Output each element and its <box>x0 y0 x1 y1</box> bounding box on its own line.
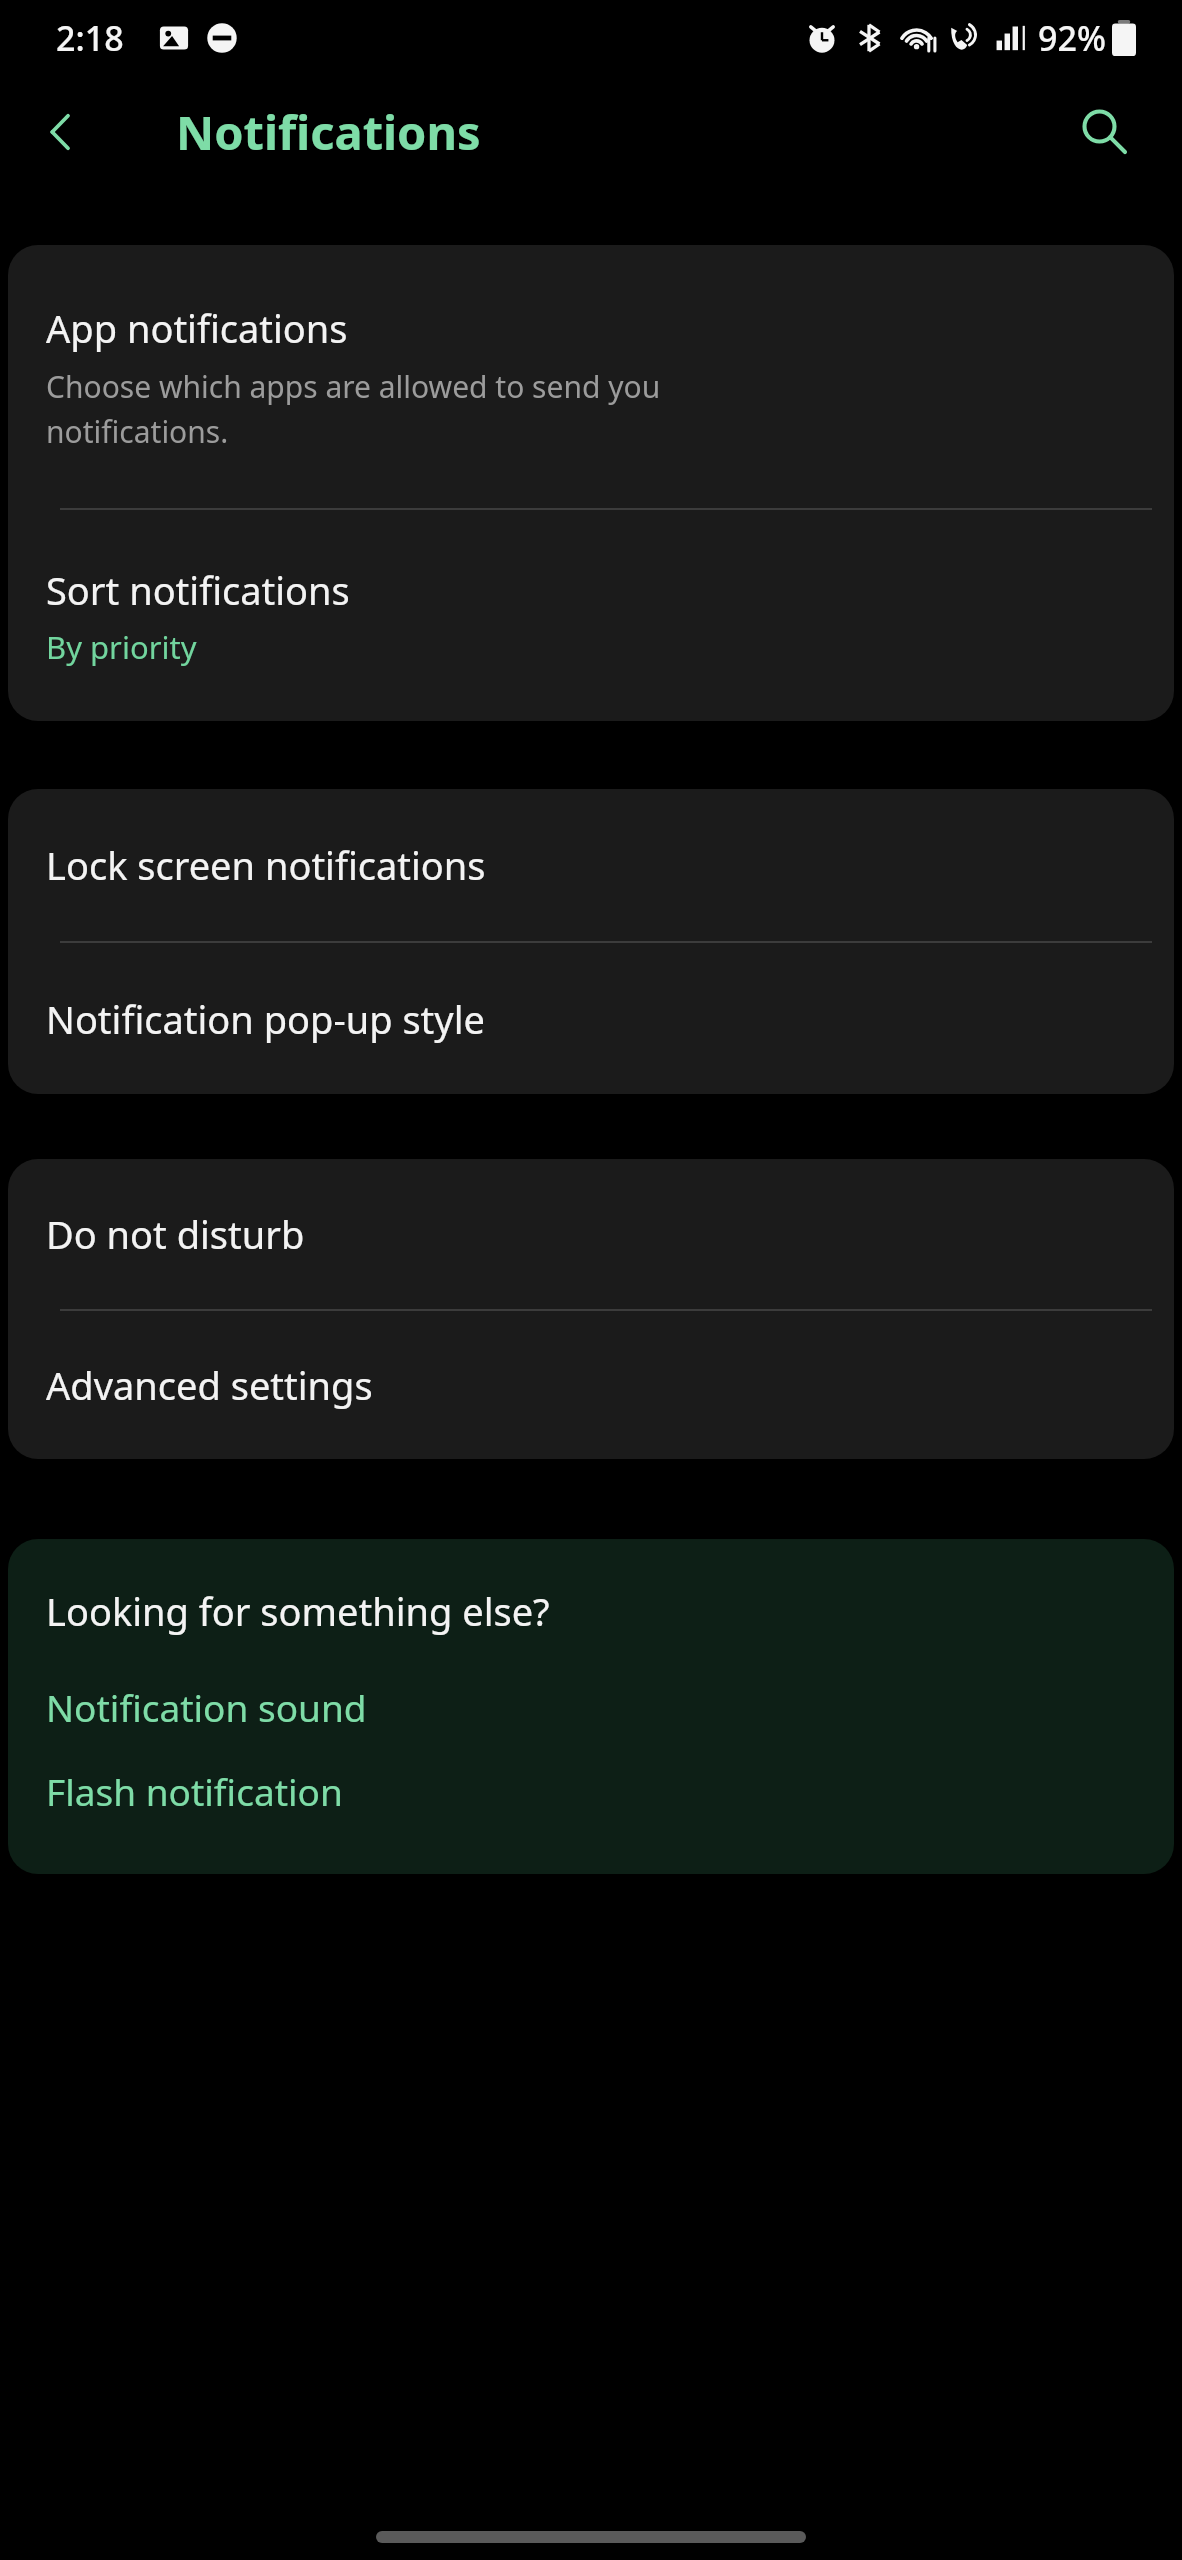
button[interactable]: Sort notifications <box>8 510 1174 721</box>
staticText: 92% <box>1038 15 1106 61</box>
staticText: Sort notifications <box>46 564 350 616</box>
staticText: Looking for something else? <box>46 1585 550 1637</box>
staticText: By priority <box>46 626 197 668</box>
button[interactable]: Notification sound <box>8 1677 1174 1737</box>
button[interactable]: Flash notification <box>8 1761 1174 1821</box>
staticText: Notification sound <box>46 1682 367 1732</box>
staticText: Advanced settings <box>46 1359 373 1411</box>
button[interactable]: Notification pop-up style <box>8 943 1174 1094</box>
button[interactable]: Do not disturb <box>8 1159 1174 1309</box>
staticText: 2:18 <box>56 15 124 61</box>
staticText: Do not disturb <box>46 1208 305 1260</box>
staticText: Flash notification <box>46 1766 343 1816</box>
staticText: Lock screen notifications <box>46 839 486 891</box>
button[interactable]: Back <box>22 93 100 171</box>
staticText: App notifications <box>46 302 348 354</box>
staticText: Notification pop-up style <box>46 993 485 1045</box>
button[interactable]: Search <box>1062 90 1146 174</box>
staticText: Choose which apps are allowed to send yo… <box>46 366 661 451</box>
button[interactable]: Advanced settings <box>8 1311 1174 1459</box>
button[interactable]: Lock screen notifications <box>8 789 1174 941</box>
button[interactable]: App notifications <box>8 245 1174 508</box>
staticText: Notifications <box>176 100 481 164</box>
